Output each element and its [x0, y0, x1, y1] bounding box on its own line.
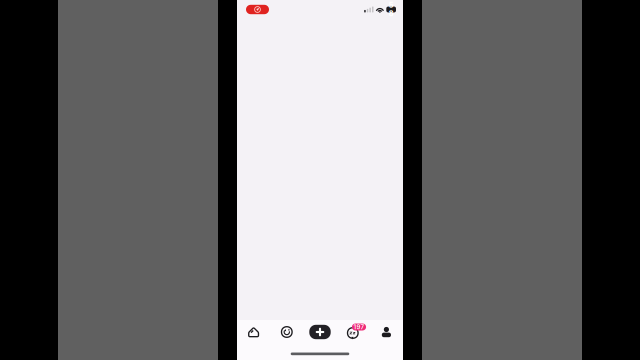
button[interactable]: Home [237, 320, 270, 344]
staticText: 58 [389, 1, 394, 18]
button[interactable]: Profile [370, 320, 403, 344]
button[interactable]: Create [303, 320, 337, 344]
button[interactable]: Inbox [337, 320, 370, 344]
staticText: 197 [353, 323, 364, 331]
button[interactable]: Discover [270, 320, 303, 344]
